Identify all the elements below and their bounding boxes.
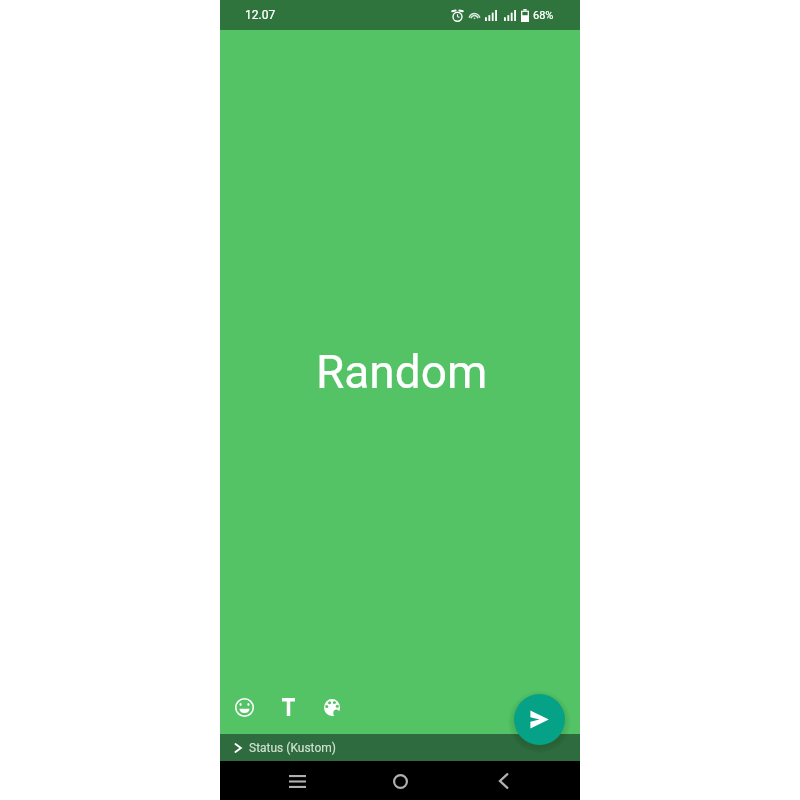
button[interactable]: Recents — [278, 762, 316, 800]
staticText: 12.07 — [245, 8, 276, 22]
staticText: 68% — [533, 9, 554, 22]
button[interactable]: Status (Kustom) — [220, 734, 580, 761]
button[interactable]: Emoji — [231, 694, 257, 720]
button[interactable]: Send — [514, 694, 565, 745]
button[interactable]: Back — [484, 762, 522, 800]
button[interactable]: Home — [381, 762, 419, 800]
staticText: Random — [316, 345, 488, 399]
button[interactable]: Text — [275, 694, 301, 720]
button[interactable]: Palette — [319, 694, 345, 720]
staticText: Status (Kustom) — [249, 741, 336, 755]
